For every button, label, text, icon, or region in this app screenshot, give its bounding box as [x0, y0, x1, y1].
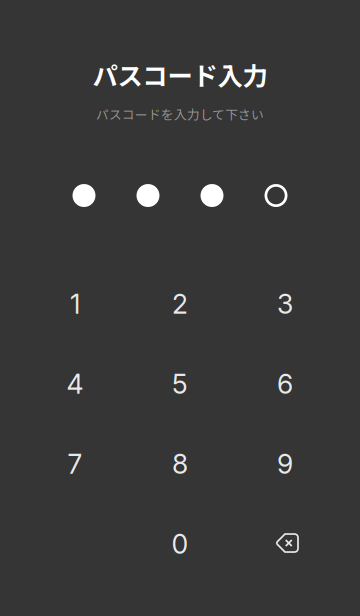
button[interactable]: 6 [232, 344, 337, 424]
staticText: パスコード入力 [92, 56, 267, 93]
button[interactable]: 1 [22, 264, 127, 344]
staticText: 3 [277, 288, 293, 320]
button[interactable]: 4 [22, 344, 127, 424]
staticText: 8 [172, 448, 188, 480]
staticText: 6 [277, 368, 293, 400]
button[interactable]: 8 [127, 424, 232, 504]
staticText: 0 [171, 528, 188, 560]
button[interactable]: Delete [232, 504, 337, 584]
button[interactable]: 5 [127, 344, 232, 424]
button[interactable]: 3 [232, 264, 337, 344]
staticText: 4 [66, 368, 83, 400]
staticText: 9 [277, 448, 293, 480]
staticText: 1 [70, 288, 80, 320]
staticText: パスコードを入力して下さい [96, 105, 264, 123]
staticText: 7 [67, 448, 82, 480]
button[interactable]: 2 [127, 264, 232, 344]
staticText: 2 [172, 288, 188, 320]
button[interactable]: 9 [232, 424, 337, 504]
button[interactable]: 7 [22, 424, 127, 504]
button[interactable]: 0 [127, 504, 232, 584]
staticText: 5 [172, 368, 188, 400]
